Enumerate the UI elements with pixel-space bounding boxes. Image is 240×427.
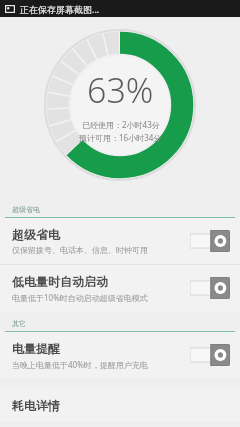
button[interactable]: Toggle <box>190 230 230 252</box>
staticText: 63% <box>87 67 154 113</box>
staticText: 电量低于10%时自动启动超级省电模式 <box>12 292 148 303</box>
staticText: 低电量时自动启动 <box>12 274 108 289</box>
other: Screenshot <box>5 4 15 14</box>
staticText: 当晚上电量低于40%时，提醒用户充电 <box>12 359 148 370</box>
staticText: 超级省电 <box>12 227 60 242</box>
button[interactable]: Toggle <box>190 344 230 366</box>
button[interactable]: 耗电详情 <box>0 388 240 422</box>
staticText: 仅保留拨号、电话本、信息、时钟可用 <box>12 245 148 255</box>
button[interactable]: 超级省电 <box>0 218 240 264</box>
staticText: 耗电详情 <box>12 398 60 413</box>
staticText: 其它 <box>12 319 26 328</box>
button[interactable]: Toggle <box>190 277 230 299</box>
staticText: 电量提醒 <box>12 341 60 356</box>
button[interactable]: 电量提醒 <box>0 332 240 378</box>
staticText: 超级省电 <box>12 205 40 214</box>
button[interactable]: 低电量时自动启动 <box>0 265 240 311</box>
staticText: 预计可用：16小时34分 <box>79 132 162 143</box>
staticText: 正在保存屏幕截图... <box>20 3 100 15</box>
staticText: 已经使用：2小时43分 <box>82 119 160 130</box>
